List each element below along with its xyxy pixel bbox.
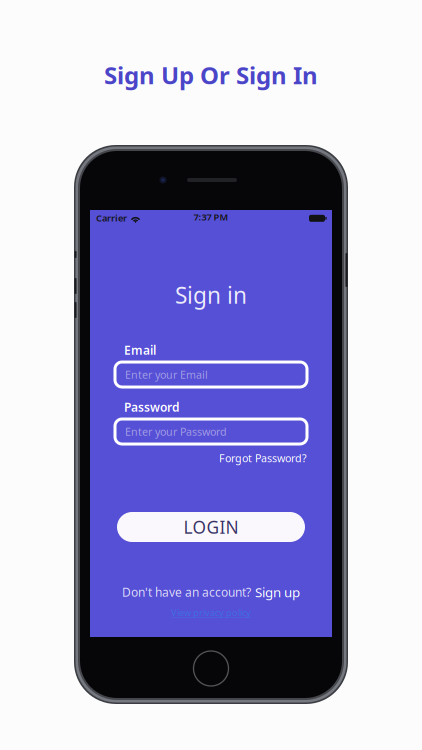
staticText: Enter your Email [125, 367, 208, 382]
staticText: View privacy policy [171, 606, 251, 619]
staticText: LOGIN [183, 515, 238, 538]
staticText: Carrier [96, 212, 127, 224]
staticText: Sign Up Or Sign In [104, 59, 318, 91]
staticText: Sign in [175, 280, 247, 310]
staticText: 7:37 PM [193, 211, 228, 223]
button[interactable]: View privacy policy [90, 607, 332, 618]
button[interactable]: Sign up [255, 583, 300, 601]
staticText: Forgot Password? [219, 451, 307, 465]
staticText: Email [124, 342, 156, 358]
staticText: Don't have an account? [122, 584, 251, 600]
staticText: Enter your Password [125, 424, 227, 439]
staticText: Password [124, 399, 180, 415]
button[interactable]: LOGIN [117, 512, 305, 542]
button[interactable]: Forgot Password? [115, 451, 307, 465]
staticText: Sign up [255, 583, 300, 601]
